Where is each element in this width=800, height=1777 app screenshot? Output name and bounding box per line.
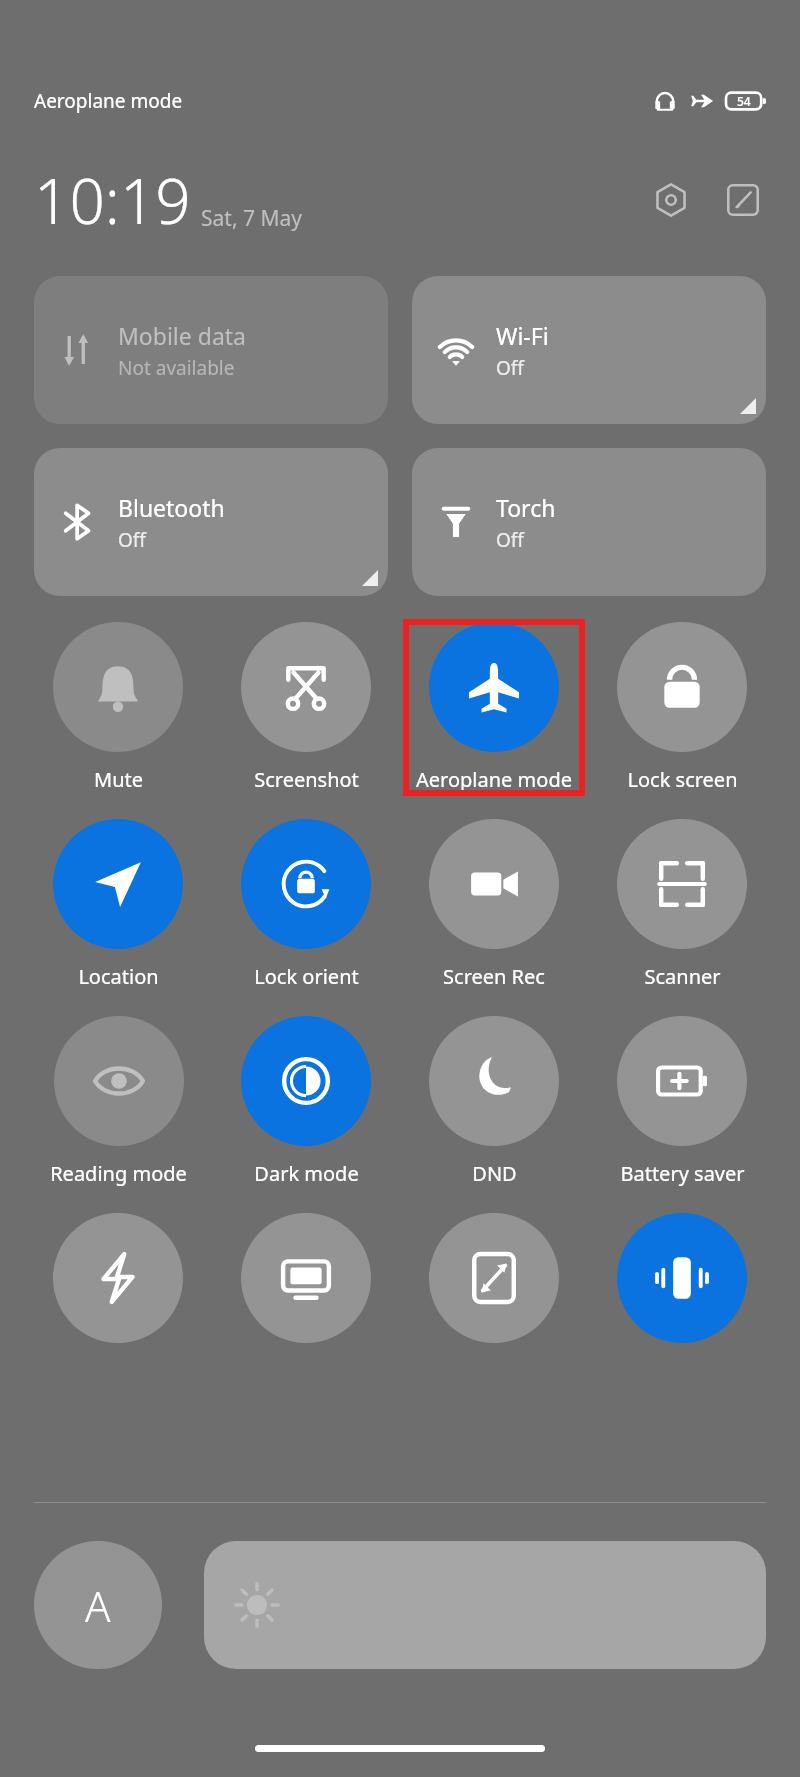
staticText: A <box>85 1577 111 1634</box>
button[interactable]: Toggle <box>53 1213 183 1343</box>
staticText: Lock screen <box>627 766 738 793</box>
button[interactable]: Mute <box>53 622 183 793</box>
staticText: Off <box>496 355 524 381</box>
button[interactable]: Bluetooth <box>34 448 388 596</box>
staticText: Screen Rec <box>443 963 545 990</box>
button[interactable]: Screen Rec <box>429 819 559 990</box>
staticText: Bluetooth <box>118 492 225 523</box>
staticText: 54 <box>737 93 751 109</box>
staticText: Mute <box>94 766 143 793</box>
button[interactable]: Aeroplane mode <box>416 622 572 793</box>
button[interactable]: Location <box>53 819 183 990</box>
button[interactable]: Auto brightness <box>34 1541 162 1669</box>
button[interactable]: Lock orient <box>241 819 371 990</box>
staticText: Off <box>496 527 524 553</box>
button[interactable]: Screenshot <box>241 622 371 793</box>
staticText: Off <box>118 527 146 553</box>
button[interactable]: Dark mode <box>241 1016 371 1187</box>
button[interactable]: Toggle <box>429 1213 559 1343</box>
button[interactable]: Lock screen <box>617 622 747 793</box>
button[interactable]: Battery saver <box>617 1016 747 1187</box>
button[interactable]: Brightness <box>204 1541 766 1669</box>
button[interactable]: Torch <box>412 448 766 596</box>
staticText: Battery saver <box>620 1160 745 1187</box>
button[interactable]: Reading mode <box>50 1016 187 1187</box>
staticText: Aeroplane mode <box>34 88 183 114</box>
button[interactable]: Wi-Fi <box>412 276 766 424</box>
staticText: Sat, 7 May <box>201 204 302 233</box>
button[interactable]: Edit <box>720 177 766 223</box>
staticText: Scanner <box>644 963 721 990</box>
staticText: Screenshot <box>254 766 359 793</box>
button[interactable]: Settings <box>648 177 694 223</box>
staticText: 10:19 <box>34 158 191 242</box>
button[interactable]: DND <box>429 1016 559 1187</box>
staticText: Location <box>78 963 159 990</box>
staticText: Mobile data <box>118 320 246 351</box>
button[interactable]: Scanner <box>617 819 747 990</box>
button[interactable]: Toggle <box>617 1213 747 1343</box>
staticText: Dark mode <box>254 1160 359 1187</box>
staticText: Not available <box>118 355 235 381</box>
staticText: DND <box>472 1160 517 1187</box>
staticText: Torch <box>496 492 556 523</box>
staticText: Wi-Fi <box>496 320 549 351</box>
button[interactable]: Mobile data <box>34 276 388 424</box>
staticText: Lock orient <box>254 963 359 990</box>
button[interactable]: Toggle <box>241 1213 371 1343</box>
staticText: Aeroplane mode <box>416 766 572 793</box>
staticText: Reading mode <box>50 1160 187 1187</box>
